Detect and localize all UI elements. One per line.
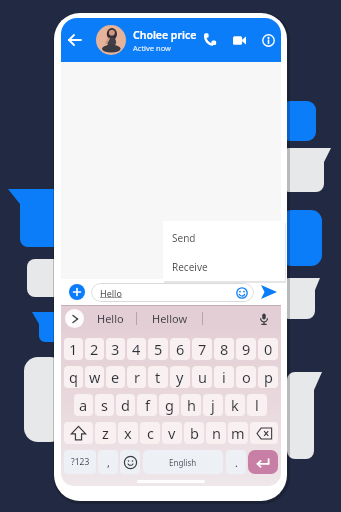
button[interactable]: a [74,394,93,416]
button[interactable]: v [162,422,182,444]
staticText: v [168,423,176,443]
button[interactable]: 6 [170,338,190,360]
button[interactable]: e [106,366,125,388]
button[interactable]: l [247,394,267,416]
button[interactable]: u [192,366,212,388]
button[interactable]: English [143,450,223,474]
staticText: 2 [90,339,99,359]
button[interactable]: 7 [192,338,212,360]
button[interactable]: Hello [91,283,254,302]
button[interactable]: q [64,366,83,388]
button[interactable]: r [127,366,146,388]
button[interactable]: 0 [258,338,278,360]
button[interactable]: m [228,422,248,444]
button[interactable]: 4 [127,338,146,360]
staticText: w [89,367,101,387]
button[interactable]: k [225,394,245,416]
button[interactable]: o [236,366,256,388]
staticText: 0 [264,339,273,359]
staticText: n [212,423,221,443]
button[interactable] [233,34,246,47]
staticText: Hello [100,287,122,299]
staticText: t [155,367,161,387]
button[interactable]: t [148,366,168,388]
button[interactable]: g [159,394,179,416]
staticText: f [145,395,150,415]
button[interactable] [120,450,140,474]
button[interactable]: 9 [236,338,256,360]
button[interactable]: , [98,450,118,474]
staticText: Hello [97,311,124,326]
button[interactable]: . [226,450,246,474]
staticText: Send [172,231,196,245]
button[interactable] [203,33,217,47]
button[interactable]: Send [163,224,285,252]
staticText: Receive [172,260,208,274]
staticText: j [211,395,215,415]
button[interactable]: ?123 [64,450,96,474]
button[interactable]: 3 [106,338,125,360]
staticText: p [264,367,273,387]
staticText: i [222,367,226,387]
button[interactable]: z [95,422,116,444]
staticText: y [176,367,184,387]
button[interactable]: n [206,422,226,444]
staticText: English [169,457,197,468]
button[interactable] [262,34,275,47]
staticText: Hellow [152,311,188,326]
button[interactable]: 8 [214,338,234,360]
button[interactable]: 1 [64,338,83,360]
button[interactable]: j [203,394,223,416]
button[interactable]: Receive [163,252,285,281]
button[interactable]: Cholee price [61,18,281,62]
staticText: Active now [133,43,171,53]
staticText: e [111,367,120,387]
button[interactable]: x [118,422,138,444]
button[interactable] [261,284,277,300]
staticText: g [165,395,174,415]
button[interactable]: s [95,394,114,416]
button[interactable] [203,306,270,331]
staticText: r [134,367,140,387]
button[interactable] [250,422,278,444]
staticText: 4 [132,339,141,359]
staticText: o [242,367,251,387]
button[interactable]: Hello [84,306,136,331]
staticText: 6 [176,339,185,359]
button[interactable]: f [137,394,157,416]
staticText: 5 [154,339,163,359]
staticText: z [102,423,109,443]
staticText: h [187,395,196,415]
staticText: q [69,367,78,387]
staticText: 7 [198,339,207,359]
staticText: c [147,423,154,443]
staticText: l [255,395,259,415]
staticText: d [121,395,130,415]
button[interactable] [64,422,93,444]
staticText: k [231,395,239,415]
button[interactable]: d [116,394,135,416]
staticText: 1 [69,339,78,359]
button[interactable] [65,309,84,328]
button[interactable]: y [170,366,190,388]
staticText: ?123 [71,456,90,468]
staticText: m [231,423,245,443]
button[interactable]: c [140,422,160,444]
button[interactable]: p [258,366,278,388]
staticText: 9 [242,339,251,359]
button[interactable]: b [184,422,204,444]
button[interactable]: 5 [148,338,168,360]
button[interactable] [69,284,85,300]
button[interactable]: 2 [85,338,104,360]
staticText: a [79,395,88,415]
button[interactable] [67,32,83,48]
button[interactable]: w [85,366,104,388]
staticText: . [235,455,238,470]
button[interactable] [248,450,278,474]
staticText: u [198,367,207,387]
staticText: x [124,423,132,443]
button[interactable]: i [214,366,234,388]
staticText: b [190,423,199,443]
button[interactable]: Hellow [137,306,202,331]
button[interactable]: h [181,394,201,416]
